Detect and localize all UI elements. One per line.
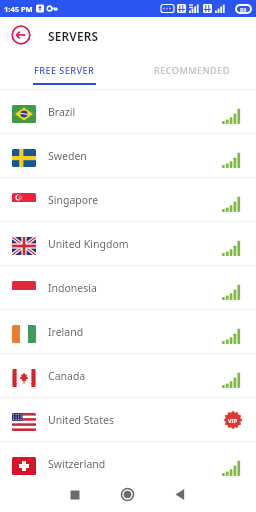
- button[interactable]: Brazil: [0, 90, 256, 134]
- staticText: Switzerland: [48, 457, 106, 471]
- button[interactable]: United States: [0, 398, 256, 442]
- staticText: 89: [240, 6, 247, 13]
- button[interactable]: FREE SERVER: [0, 56, 128, 90]
- staticText: Brazil: [48, 105, 76, 119]
- button[interactable]: Ireland: [0, 310, 256, 354]
- button[interactable]: Indonesia: [0, 266, 256, 310]
- button[interactable]: [0, 486, 256, 512]
- button[interactable]: Singapore: [0, 178, 256, 222]
- button[interactable]: RECOMMENDED: [128, 56, 256, 90]
- button[interactable]: [8, 22, 34, 48]
- staticText: Singapore: [48, 193, 99, 207]
- staticText: United Kingdom: [48, 237, 129, 251]
- staticText: FREE SERVER: [34, 64, 95, 77]
- staticText: Canada: [48, 369, 86, 383]
- button[interactable]: Canada: [0, 354, 256, 398]
- staticText: SERVERS: [48, 28, 99, 44]
- staticText: VIP: [228, 417, 238, 424]
- button[interactable]: Sweden: [0, 134, 256, 178]
- staticText: Sweden: [48, 149, 87, 163]
- staticText: 1:45 PM: [4, 4, 33, 14]
- staticText: Indonesia: [48, 281, 97, 295]
- button[interactable]: United Kingdom: [0, 222, 256, 266]
- button[interactable]: Switzerland: [0, 442, 256, 486]
- staticText: United States: [48, 413, 114, 427]
- staticText: RECOMMENDED: [154, 64, 230, 77]
- staticText: Ireland: [48, 325, 84, 339]
